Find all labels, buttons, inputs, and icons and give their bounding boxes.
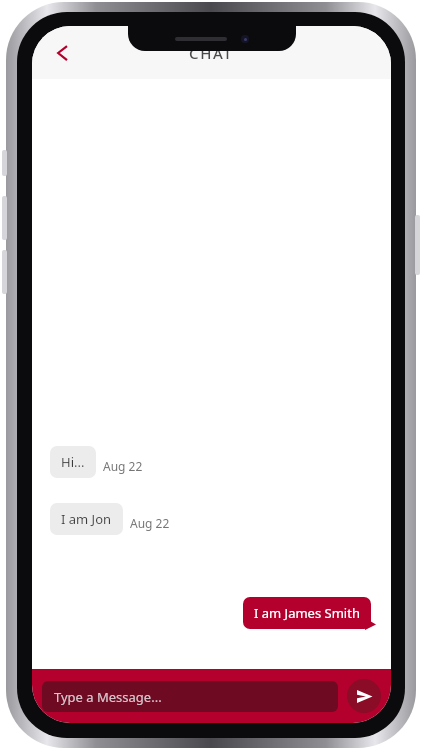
staticText: Aug 22 — [103, 458, 143, 474]
staticText: I am Jon — [61, 510, 112, 528]
staticText: Type a Message... — [54, 688, 162, 706]
button[interactable]: Type a Message... — [42, 681, 338, 712]
button[interactable]: Back — [40, 30, 86, 76]
staticText: CHAT — [189, 43, 234, 63]
button[interactable]: I am James Smith — [243, 597, 371, 629]
button[interactable]: Hi... — [50, 446, 96, 478]
staticText: Hi... — [61, 453, 85, 471]
staticText: I am James Smith — [254, 604, 360, 622]
button[interactable]: Send — [347, 679, 381, 713]
staticText: Aug 22 — [130, 515, 170, 531]
button[interactable]: I am Jon — [50, 503, 123, 535]
